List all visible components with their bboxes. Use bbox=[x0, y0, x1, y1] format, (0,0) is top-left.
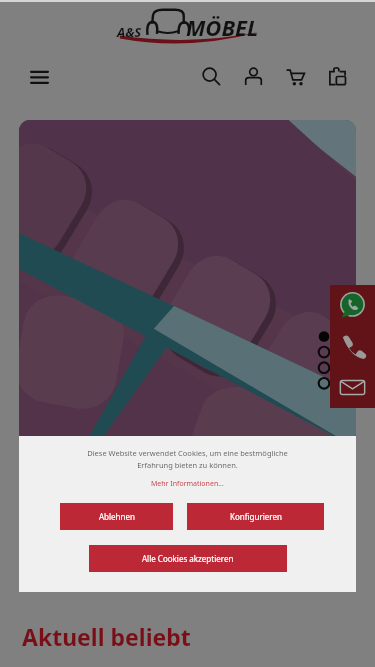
staticText: MÖBEL bbox=[186, 12, 259, 42]
staticText: Alle Cookies akzeptieren bbox=[142, 553, 234, 564]
button[interactable]: Chat on WhatsApp bbox=[330, 285, 375, 326]
staticText: Ablehnen bbox=[99, 511, 135, 522]
staticText: Konfigurieren bbox=[230, 511, 282, 522]
button[interactable]: Call us bbox=[330, 326, 375, 367]
staticText: Neue Sitzmöbel bbox=[42, 550, 269, 589]
button[interactable]: Menu bbox=[24, 61, 54, 91]
staticText: A&S bbox=[117, 23, 142, 41]
button[interactable]: Ablehnen bbox=[60, 503, 173, 530]
button[interactable]: Compare products bbox=[322, 61, 352, 91]
button[interactable]: Shopping cart bbox=[280, 61, 310, 91]
staticText: Aktuell beliebt bbox=[22, 621, 191, 652]
staticText: Diese Website verwendet Cookies, um eine… bbox=[87, 448, 288, 471]
button[interactable]: Search bbox=[196, 61, 226, 91]
button[interactable]: Alle Cookies akzeptieren bbox=[89, 545, 287, 572]
button[interactable]: Send e-mail bbox=[330, 367, 375, 408]
button[interactable]: Account bbox=[238, 61, 268, 91]
button[interactable]: A&S Möbel home bbox=[117, 7, 259, 45]
button[interactable]: Konfigurieren bbox=[187, 503, 324, 530]
button[interactable]: Mehr Informationen... bbox=[151, 479, 224, 489]
